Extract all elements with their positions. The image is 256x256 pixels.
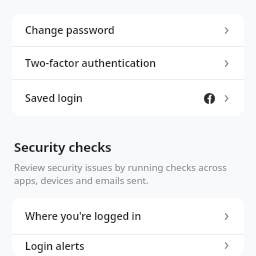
staticText: Change password: [25, 23, 221, 37]
staticText: Review security issues by running checks…: [14, 161, 244, 187]
button[interactable]: Login alerts: [12, 235, 244, 256]
button[interactable]: Saved login: [12, 80, 244, 116]
button[interactable]: Two-factor authentication: [12, 47, 244, 79]
button[interactable]: Where you're logged in: [12, 198, 244, 234]
staticText: Saved login: [25, 91, 204, 105]
staticText: Login alerts: [25, 239, 221, 253]
staticText: Two-factor authentication: [25, 56, 221, 70]
staticText: Where you're logged in: [25, 209, 221, 223]
button[interactable]: Change password: [12, 14, 244, 46]
staticText: Security checks: [14, 138, 112, 156]
